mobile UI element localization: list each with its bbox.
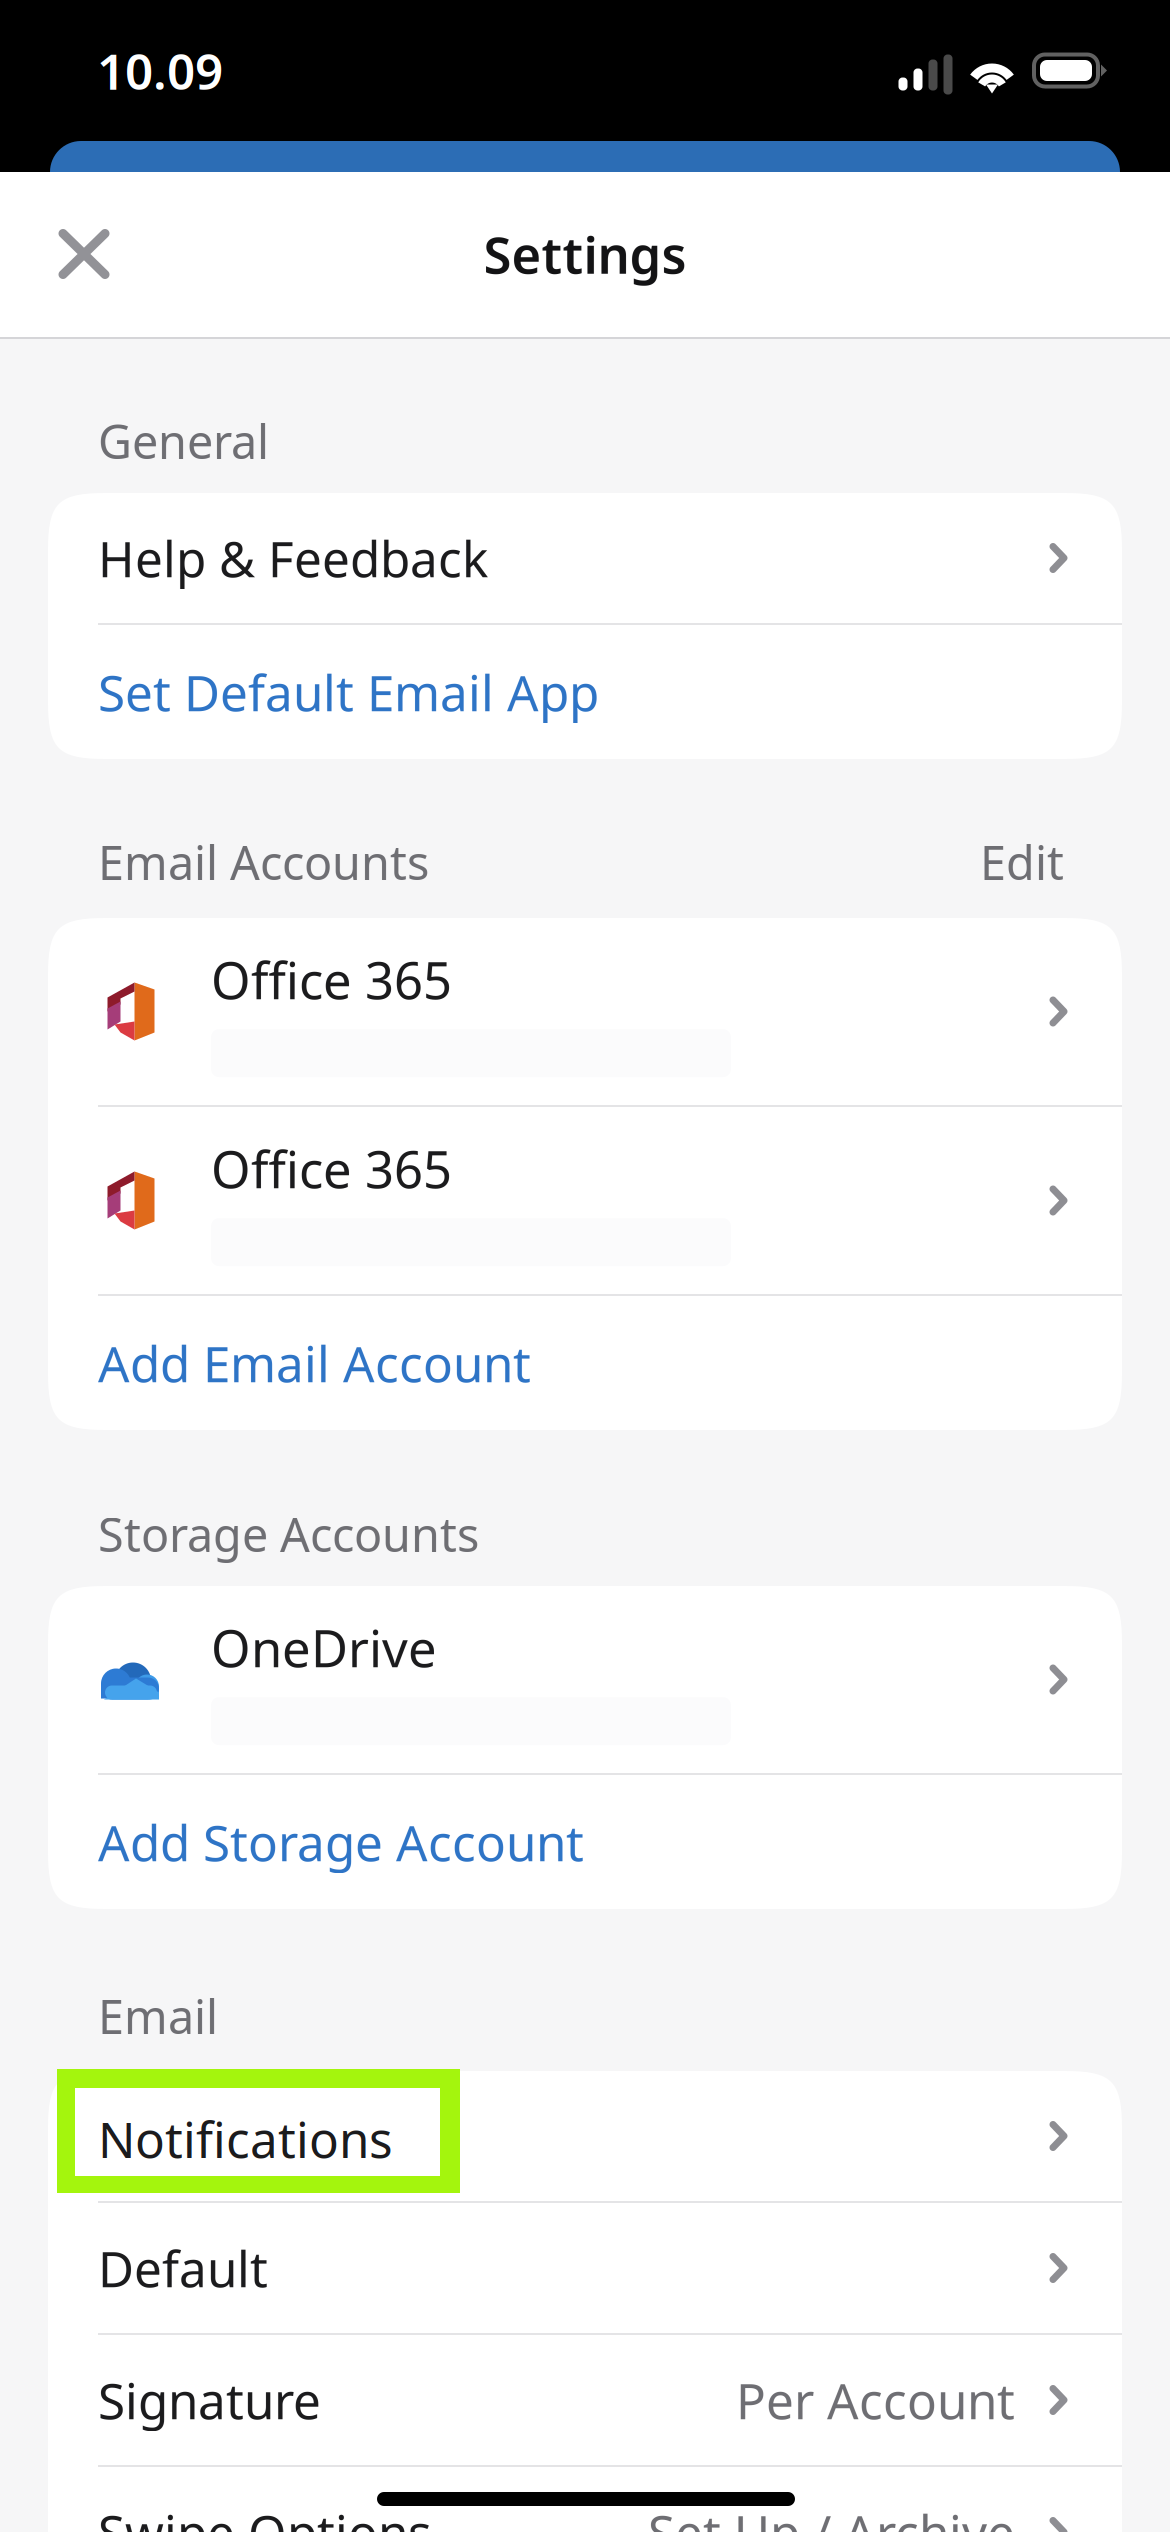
button[interactable]: OneDrive (48, 1586, 1122, 1773)
staticText: Notifications (98, 2106, 393, 2171)
staticText: OneDrive (211, 1614, 437, 1681)
button[interactable]: Help & Feedback (48, 493, 1122, 623)
button[interactable]: Edit (980, 831, 1064, 893)
staticText: Email Accounts (98, 831, 429, 893)
staticText: Settings (483, 220, 686, 288)
button[interactable]: Default (48, 2203, 1122, 2333)
button[interactable]: Add Storage Account (48, 1775, 1122, 1909)
staticText: 10.09 (97, 38, 223, 103)
staticText: Storage Accounts (98, 1503, 479, 1565)
button[interactable]: Signature (48, 2335, 1122, 2465)
staticText: Add Email Account (98, 1330, 531, 1396)
button[interactable]: Add Email Account (48, 1296, 1122, 1430)
staticText: Edit (980, 831, 1064, 893)
button[interactable]: Office 365 (48, 918, 1122, 1105)
staticText: Set Up / Archive (648, 2499, 1015, 2532)
staticText: Help & Feedback (98, 525, 488, 591)
staticText: Office 365 (211, 1135, 452, 1202)
button[interactable]: Swipe Options (48, 2467, 1122, 2532)
staticText: Default (98, 2235, 268, 2301)
button[interactable]: Set Default Email App (48, 625, 1122, 759)
staticText: Set Default Email App (98, 659, 599, 725)
staticText: Office 365 (211, 946, 452, 1013)
button[interactable]: Notifications (48, 2071, 1122, 2201)
staticText: Signature (98, 2367, 321, 2433)
staticText: Notifications (98, 2103, 393, 2169)
button[interactable]: Close (0, 171, 149, 337)
staticText: Add Storage Account (98, 1809, 584, 1875)
staticText: General (98, 410, 269, 472)
staticText: Email (98, 1985, 218, 2047)
staticText: Per Account (736, 2367, 1015, 2433)
staticText: Swipe Options (98, 2499, 432, 2532)
button[interactable]: Office 365 (48, 1107, 1122, 1294)
